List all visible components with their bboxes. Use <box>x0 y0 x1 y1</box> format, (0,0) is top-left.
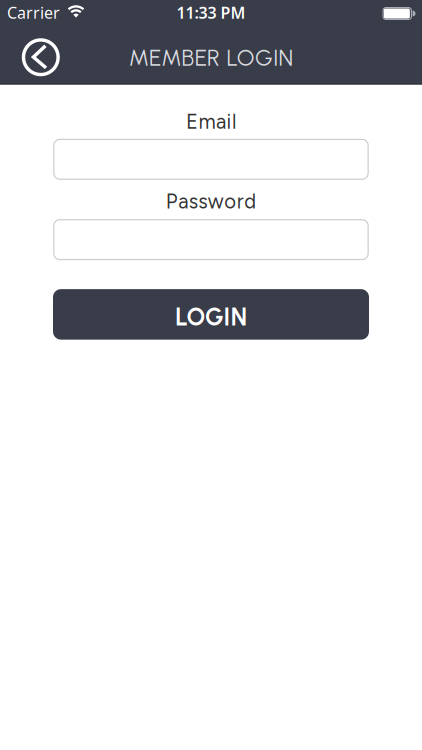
staticText: LOGIN <box>175 302 247 331</box>
button[interactable]: Back <box>22 38 60 76</box>
textField[interactable]: Email <box>53 144 369 174</box>
staticText: Carrier <box>7 2 60 23</box>
staticText: Password <box>166 189 256 214</box>
button[interactable]: LOGIN <box>53 289 369 340</box>
textField[interactable]: Password <box>53 225 369 255</box>
staticText: MEMBER LOGIN <box>129 44 293 71</box>
staticText: Email <box>186 109 236 134</box>
staticText: 11:33 PM <box>176 2 245 23</box>
